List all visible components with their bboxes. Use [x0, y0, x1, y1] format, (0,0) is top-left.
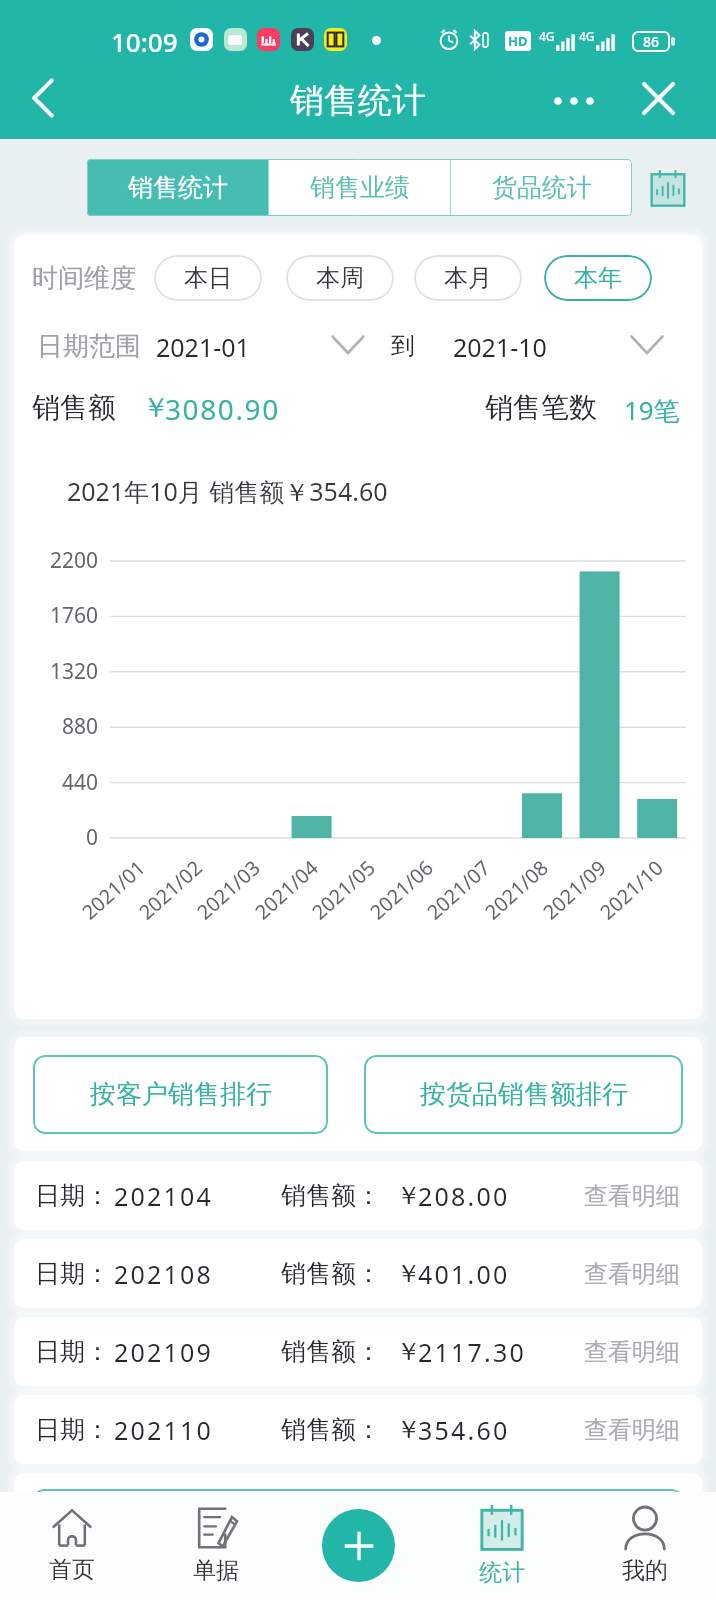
staticText: 查看明细: [584, 1337, 680, 1367]
button[interactable]: 按货品销售额排行: [364, 1055, 683, 1134]
staticText: 2021/10: [594, 854, 669, 925]
staticText: 86: [643, 32, 660, 51]
staticText: 按客户销售排行: [90, 1078, 272, 1111]
staticText: 到: [391, 331, 415, 361]
staticText: 1320: [49, 657, 98, 686]
staticText: 401.00: [418, 1257, 510, 1291]
staticText: 208.00: [418, 1179, 510, 1213]
staticText: 2021年10月 销售额￥354.60: [67, 474, 388, 508]
staticText: 销售统计: [290, 79, 426, 122]
staticText: 日期：: [35, 1180, 110, 1211]
staticText: 销售笔数: [485, 390, 597, 425]
staticText: 日期：: [35, 1414, 110, 1445]
button[interactable]: Back: [14, 69, 72, 127]
staticText: 首页: [49, 1555, 95, 1584]
staticText: 本年: [574, 263, 622, 293]
staticText: ￥: [396, 1336, 421, 1367]
button[interactable]: 日期：: [14, 1161, 702, 1230]
staticText: 2021/01: [76, 854, 151, 925]
staticText: 440: [61, 768, 98, 797]
staticText: 202110: [114, 1413, 214, 1447]
staticText: 202104: [114, 1179, 214, 1213]
staticText: 2021/04: [249, 854, 324, 925]
staticText: 4G: [539, 28, 555, 44]
staticText: 销售统计: [128, 172, 228, 203]
staticText: 1760: [49, 601, 98, 630]
button[interactable]: 本年: [544, 255, 652, 301]
button[interactable]: 日期：: [14, 1317, 702, 1386]
staticText: ￥: [396, 1180, 421, 1211]
button[interactable]: 本周: [286, 255, 394, 301]
button[interactable]: 销售业绩: [269, 159, 450, 216]
staticText: 日期：: [35, 1336, 110, 1367]
staticText: 2200: [49, 546, 98, 575]
staticText: 2021/05: [306, 854, 381, 925]
staticText: 查看明细: [584, 1415, 680, 1445]
button[interactable]: Calendar: [649, 169, 687, 207]
staticText: 销售额：: [281, 1258, 381, 1289]
staticText: ￥: [142, 390, 170, 425]
staticText: 销售额：: [281, 1336, 381, 1367]
staticText: 4G: [579, 28, 595, 44]
staticText: HD: [508, 32, 528, 50]
staticText: 2021/09: [537, 854, 612, 925]
staticText: 销售额: [32, 390, 116, 425]
button[interactable]: 单据: [144, 1492, 287, 1600]
button[interactable]: More options: [545, 72, 603, 130]
staticText: 查看明细: [584, 1259, 680, 1289]
staticText: 查看明细: [584, 1181, 680, 1211]
button[interactable]: 销售统计: [87, 159, 268, 216]
staticText: 单据: [193, 1556, 239, 1585]
button[interactable]: Add new: [322, 1509, 395, 1582]
staticText: 354.60: [418, 1413, 510, 1447]
button[interactable]: 按客户销售排行: [33, 1055, 328, 1134]
staticText: 日期：: [35, 1258, 110, 1289]
staticText: 日期范围: [37, 330, 141, 363]
staticText: 货品统计: [492, 172, 592, 203]
staticText: 2021-10: [453, 330, 547, 364]
staticText: 202109: [114, 1335, 214, 1369]
staticText: 880: [61, 712, 98, 741]
staticText: 按货品销售额排行: [420, 1078, 628, 1111]
button[interactable]: 统计: [430, 1492, 573, 1600]
staticText: 销售额：: [281, 1180, 381, 1211]
staticText: 2021/07: [421, 854, 496, 925]
staticText: 我的: [622, 1556, 668, 1585]
staticText: 2021-01: [156, 330, 250, 364]
staticText: 202108: [114, 1257, 214, 1291]
staticText: 2117.30: [418, 1335, 526, 1369]
button[interactable]: Close: [629, 69, 687, 127]
button[interactable]: 首页: [0, 1492, 144, 1600]
staticText: 19笔: [624, 392, 680, 428]
staticText: ￥: [396, 1258, 421, 1289]
staticText: 0: [85, 823, 98, 852]
button[interactable]: 货品统计: [451, 159, 632, 216]
staticText: 本周: [316, 263, 364, 293]
staticText: 3080.90: [165, 390, 280, 428]
button[interactable]: 我的: [573, 1492, 716, 1600]
staticText: 2021/03: [191, 854, 266, 925]
staticText: ￥: [396, 1414, 421, 1445]
staticText: 统计: [479, 1558, 525, 1587]
staticText: 2021/02: [133, 854, 208, 925]
staticText: 2021/06: [364, 854, 439, 925]
staticText: 10:09: [111, 24, 178, 59]
button[interactable]: 日期：: [14, 1395, 702, 1464]
staticText: 2021/08: [479, 854, 554, 925]
staticText: 销售额：: [281, 1414, 381, 1445]
button[interactable]: 本月: [414, 255, 522, 301]
button[interactable]: 本日: [154, 255, 262, 301]
staticText: 本月: [444, 263, 492, 293]
staticText: 本日: [184, 263, 232, 293]
button[interactable]: 日期：: [14, 1239, 702, 1308]
staticText: 时间维度: [32, 262, 136, 295]
staticText: 销售业绩: [310, 172, 410, 203]
